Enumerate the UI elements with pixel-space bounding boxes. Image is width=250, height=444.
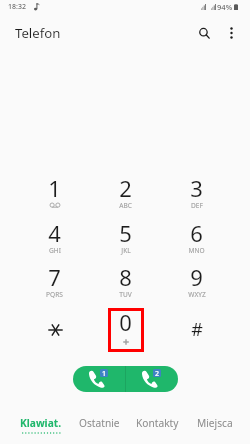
button[interactable]: 3 — [161, 173, 232, 218]
staticText: 1 — [102, 369, 107, 377]
staticText: WXYZ — [188, 290, 206, 299]
button[interactable]: 6 — [161, 218, 232, 263]
staticText: 3 — [190, 173, 203, 203]
button[interactable]: 9 — [161, 262, 232, 307]
staticText: DEF — [191, 201, 203, 210]
button[interactable]: Klawiat. — [11, 404, 70, 444]
staticText: # — [191, 317, 203, 342]
staticText: 7 — [48, 262, 61, 292]
staticText: 18:32 — [8, 2, 26, 12]
button[interactable]: Kontakty — [128, 404, 186, 444]
staticText: 5 — [119, 218, 132, 248]
staticText: ABC — [119, 201, 132, 210]
staticText: 9 — [190, 262, 203, 292]
staticText: Miejsca — [197, 416, 233, 430]
button[interactable]: Ostatnie — [70, 404, 128, 444]
staticText: 2 — [155, 369, 160, 377]
staticText: 2 — [119, 173, 132, 203]
button[interactable]: Call with SIM 2 — [126, 366, 178, 392]
staticText: JKL — [121, 246, 131, 255]
button[interactable]: 8 — [90, 262, 161, 307]
button[interactable]: 0 — [90, 307, 161, 352]
staticText: Telefon — [15, 24, 61, 42]
staticText: Klawiat. — [20, 416, 62, 430]
staticText: TUV — [119, 290, 132, 299]
staticText: 8 — [119, 262, 132, 292]
staticText: 6 — [190, 218, 203, 248]
staticText: Ostatnie — [79, 416, 120, 430]
button[interactable]: # — [161, 307, 232, 352]
staticText: 94% — [217, 2, 233, 12]
staticText: 4 — [48, 218, 61, 248]
staticText: Kontakty — [136, 416, 179, 430]
button[interactable]: 5 — [90, 218, 161, 263]
button[interactable]: Search — [191, 20, 217, 46]
button[interactable]: 1 — [19, 173, 90, 218]
button[interactable]: Call with SIM 1 — [73, 366, 125, 392]
button[interactable]: Miejsca — [186, 404, 244, 444]
button[interactable]: 2 — [90, 173, 161, 218]
button[interactable]: More options — [218, 20, 244, 46]
staticText: MNO — [188, 246, 205, 255]
staticText: GHI — [49, 246, 61, 255]
staticText: PQRS — [46, 290, 63, 299]
staticText: 1 — [48, 173, 61, 203]
button[interactable]: 4 — [19, 218, 90, 263]
button[interactable]: 7 — [19, 262, 90, 307]
staticText: 0 — [119, 307, 132, 337]
button[interactable] — [19, 307, 90, 352]
